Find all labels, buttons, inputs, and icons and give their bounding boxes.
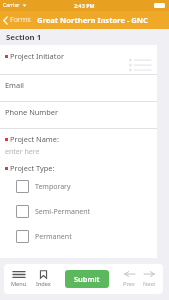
staticText: Phone Number <box>5 107 59 117</box>
staticText: Carrier <box>3 2 20 9</box>
button[interactable]: Previous <box>122 269 136 289</box>
staticText: Semi-Permanent <box>35 207 91 217</box>
staticText: Submit <box>74 274 100 284</box>
other: Index <box>39 270 48 279</box>
button[interactable]: Project Initiator <box>0 45 157 74</box>
button[interactable]: Forms <box>0 13 33 27</box>
staticText: Great Northern Instore - GNC <box>37 15 148 25</box>
button[interactable]: Menu <box>10 269 28 289</box>
staticText: Temporary <box>35 182 71 192</box>
button[interactable]: Phone Number <box>0 102 157 128</box>
staticText: Project Type: <box>10 163 55 173</box>
staticText: Forms <box>10 15 31 25</box>
staticText: Index <box>36 280 51 288</box>
button[interactable]: Index <box>35 269 52 289</box>
staticText: Project Name: <box>10 134 59 144</box>
other: Menu <box>13 270 25 279</box>
button[interactable]: Project Name: <box>0 129 157 159</box>
button[interactable]: Email <box>0 75 157 101</box>
button[interactable]: Next <box>142 269 157 289</box>
other: Next <box>144 270 155 279</box>
button[interactable]: Permanent <box>0 229 157 244</box>
staticText: Section 1 <box>6 32 42 43</box>
staticText: Prev <box>123 280 135 288</box>
staticText: 2:43 PM <box>74 2 95 9</box>
button[interactable]: Semi-Permanent <box>0 204 157 219</box>
staticText: Project Initiator <box>10 51 64 61</box>
staticText: enter here <box>5 147 40 157</box>
other: Previous <box>124 270 135 279</box>
button[interactable]: Temporary <box>0 179 157 194</box>
staticText: Next <box>143 280 156 288</box>
button[interactable]: Submit <box>65 270 109 288</box>
staticText: Email <box>5 80 24 90</box>
staticText: Menu <box>11 280 27 288</box>
staticText: Permanent <box>35 232 72 242</box>
